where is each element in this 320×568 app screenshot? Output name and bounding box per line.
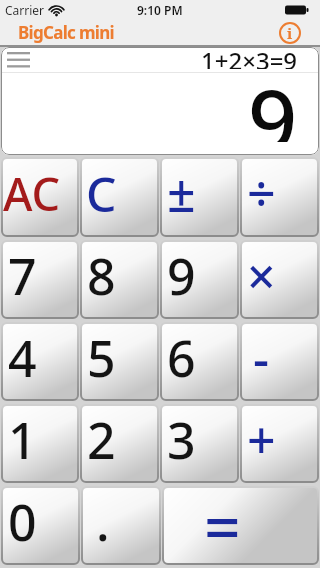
button[interactable]: 8 (81, 241, 158, 318)
button[interactable]: - (241, 323, 318, 400)
staticText: 3 (167, 406, 196, 474)
button[interactable]: i (279, 22, 301, 44)
button[interactable]: 6 (161, 323, 238, 400)
button[interactable]: . (82, 487, 160, 564)
staticText: 6 (167, 324, 196, 392)
button[interactable]: + (241, 405, 318, 482)
button[interactable]: 5 (81, 323, 158, 400)
button[interactable]: 9 (161, 241, 238, 318)
staticText: 5 (87, 324, 116, 392)
staticText: 9:10 PM (137, 2, 183, 18)
staticText: + (247, 406, 276, 474)
staticText: × (247, 242, 276, 310)
staticText: 4 (8, 324, 37, 392)
button[interactable]: 3 (161, 405, 238, 482)
button[interactable]: ÷ (241, 158, 318, 236)
button[interactable]: × (241, 241, 318, 318)
staticText: 9 (248, 60, 298, 142)
staticText: 1 (8, 406, 37, 474)
staticText: . (96, 488, 110, 556)
staticText: C (86, 161, 117, 226)
button[interactable]: AC (2, 158, 78, 236)
button[interactable]: = (163, 487, 318, 564)
staticText: 1+2×3=9 (201, 47, 298, 69)
button[interactable]: 4 (2, 323, 78, 400)
staticText: ÷ (247, 159, 276, 227)
button[interactable]: 1 (2, 405, 78, 482)
staticText: - (253, 324, 270, 392)
staticText: AC (3, 163, 61, 224)
staticText: i (287, 23, 293, 43)
staticText: 7 (8, 242, 37, 310)
staticText: 2 (87, 406, 116, 474)
button[interactable] (1, 48, 34, 72)
staticText: 8 (87, 242, 116, 310)
staticText: Carrier (5, 2, 45, 18)
staticText: = (204, 483, 241, 560)
button[interactable]: 0 (2, 487, 79, 564)
button[interactable]: C (81, 158, 158, 236)
staticText: 9 (167, 242, 196, 310)
staticText: 0 (8, 488, 37, 556)
button[interactable]: ± (161, 158, 238, 236)
staticText: ± (167, 159, 196, 227)
button[interactable]: 2 (81, 405, 158, 482)
staticText: BigCalc mini (18, 21, 114, 44)
button[interactable]: 7 (2, 241, 78, 318)
